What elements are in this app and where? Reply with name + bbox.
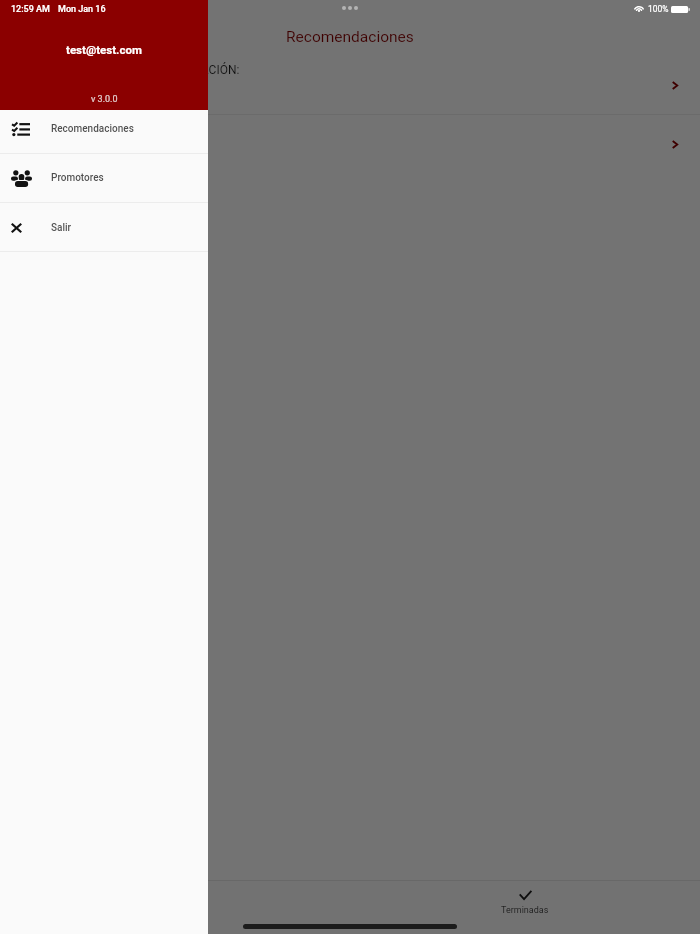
button[interactable]: Pendientes	[0, 886, 350, 920]
other: Ver detalle	[666, 135, 684, 153]
staticText: Terminadas	[501, 905, 549, 916]
staticText: Salir	[51, 222, 72, 234]
button[interactable]	[0, 0, 700, 934]
button[interactable]: SIN RECOMENDACIÓN:	[0, 55, 700, 114]
button[interactable]: Salir	[0, 203, 208, 251]
staticText: 100%	[648, 4, 669, 14]
button[interactable]: Ver detalle	[0, 115, 700, 173]
button[interactable]: Terminadas	[350, 886, 700, 920]
staticText: 12:59 AM	[11, 4, 50, 15]
button[interactable]: Recomendaciones	[0, 110, 208, 153]
staticText: Mon Jan 16	[58, 4, 106, 15]
staticText: SIN RECOMENDACIÓN:	[115, 63, 240, 77]
staticText: v 3.0.0	[91, 94, 118, 105]
staticText: test@test.com	[66, 43, 142, 56]
button[interactable]: Promotores	[0, 154, 208, 202]
other: Ver detalle	[666, 76, 684, 94]
staticText: Recomendaciones	[286, 28, 414, 46]
staticText: Recomendaciones	[51, 123, 134, 135]
staticText: Promotores	[51, 172, 104, 184]
